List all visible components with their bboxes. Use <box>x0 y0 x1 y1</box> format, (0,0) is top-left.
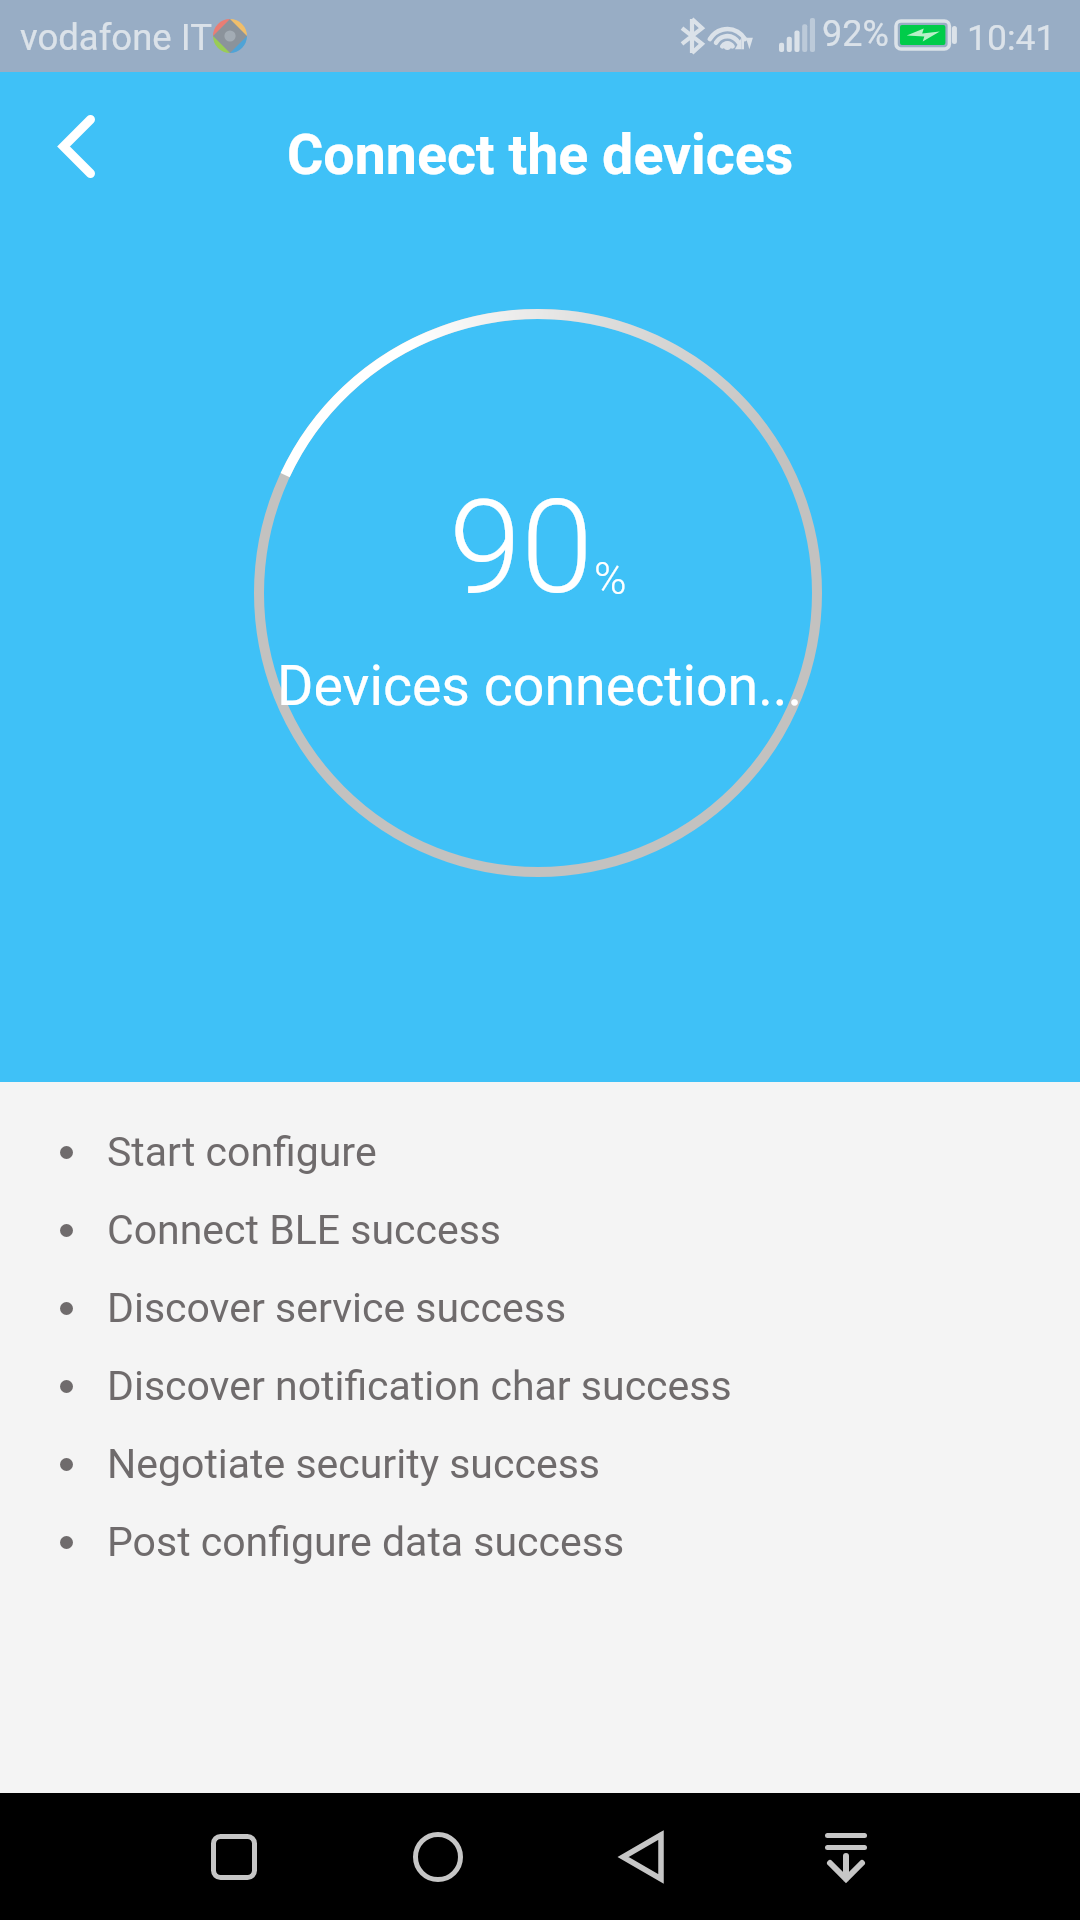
button[interactable]: Connect BLE success <box>0 1191 1080 1269</box>
staticText: Post configure data success <box>107 1518 625 1566</box>
staticText: 92% <box>822 13 889 55</box>
staticText: Discover notification char success <box>107 1362 732 1410</box>
staticText: % <box>594 553 627 605</box>
button[interactable]: Recents <box>174 1797 294 1917</box>
staticText: Devices connection... <box>277 654 803 719</box>
staticText: Connect the devices <box>287 123 794 188</box>
button[interactable]: Start configure <box>0 1113 1080 1191</box>
button[interactable]: Home <box>378 1797 498 1917</box>
staticText: Connect BLE success <box>107 1206 501 1254</box>
button[interactable]: Back <box>12 86 138 206</box>
staticText: 10:41 <box>967 17 1056 59</box>
staticText: 90 <box>449 471 594 623</box>
staticText: Start configure <box>107 1128 377 1176</box>
button[interactable]: Post configure data success <box>0 1503 1080 1581</box>
staticText: Discover service success <box>107 1284 567 1332</box>
button[interactable]: Hide navigation bar <box>786 1797 906 1917</box>
button[interactable]: Discover service success <box>0 1269 1080 1347</box>
staticText: vodafone IT <box>20 16 212 59</box>
button[interactable]: Back <box>582 1797 702 1917</box>
button[interactable]: Negotiate security success <box>0 1425 1080 1503</box>
staticText: Negotiate security success <box>107 1440 600 1488</box>
button[interactable]: Discover notification char success <box>0 1347 1080 1425</box>
